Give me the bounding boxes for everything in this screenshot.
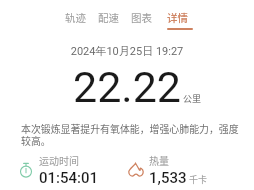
button[interactable]: 配速 [98, 10, 119, 25]
staticText: 2024年10月25日 19:27 [0, 44, 254, 58]
other: Calories [127, 161, 145, 179]
staticText: 本次锻炼显著提升有氧体能，增强心肺能力，强度较高。 [21, 122, 243, 148]
staticText: 22.22 [0, 62, 254, 112]
staticText: 热量 [149, 153, 169, 167]
staticText: 运动时间 [39, 153, 79, 167]
other: Duration [17, 161, 35, 179]
button[interactable]: Calories [127, 153, 208, 187]
button[interactable]: Duration [17, 153, 99, 187]
button[interactable]: 详情 [164, 10, 190, 25]
staticText: 轨迹 [65, 10, 86, 25]
staticText: 图表 [131, 10, 152, 25]
staticText: 公里 [183, 92, 202, 105]
staticText: 千卡 [189, 173, 208, 186]
button[interactable]: 轨迹 [65, 10, 86, 25]
staticText: 01:54:01 [39, 169, 99, 187]
staticText: 详情 [167, 10, 188, 25]
staticText: 配速 [98, 10, 119, 25]
button[interactable]: 图表 [131, 10, 152, 25]
staticText: 1,533 [149, 169, 187, 187]
